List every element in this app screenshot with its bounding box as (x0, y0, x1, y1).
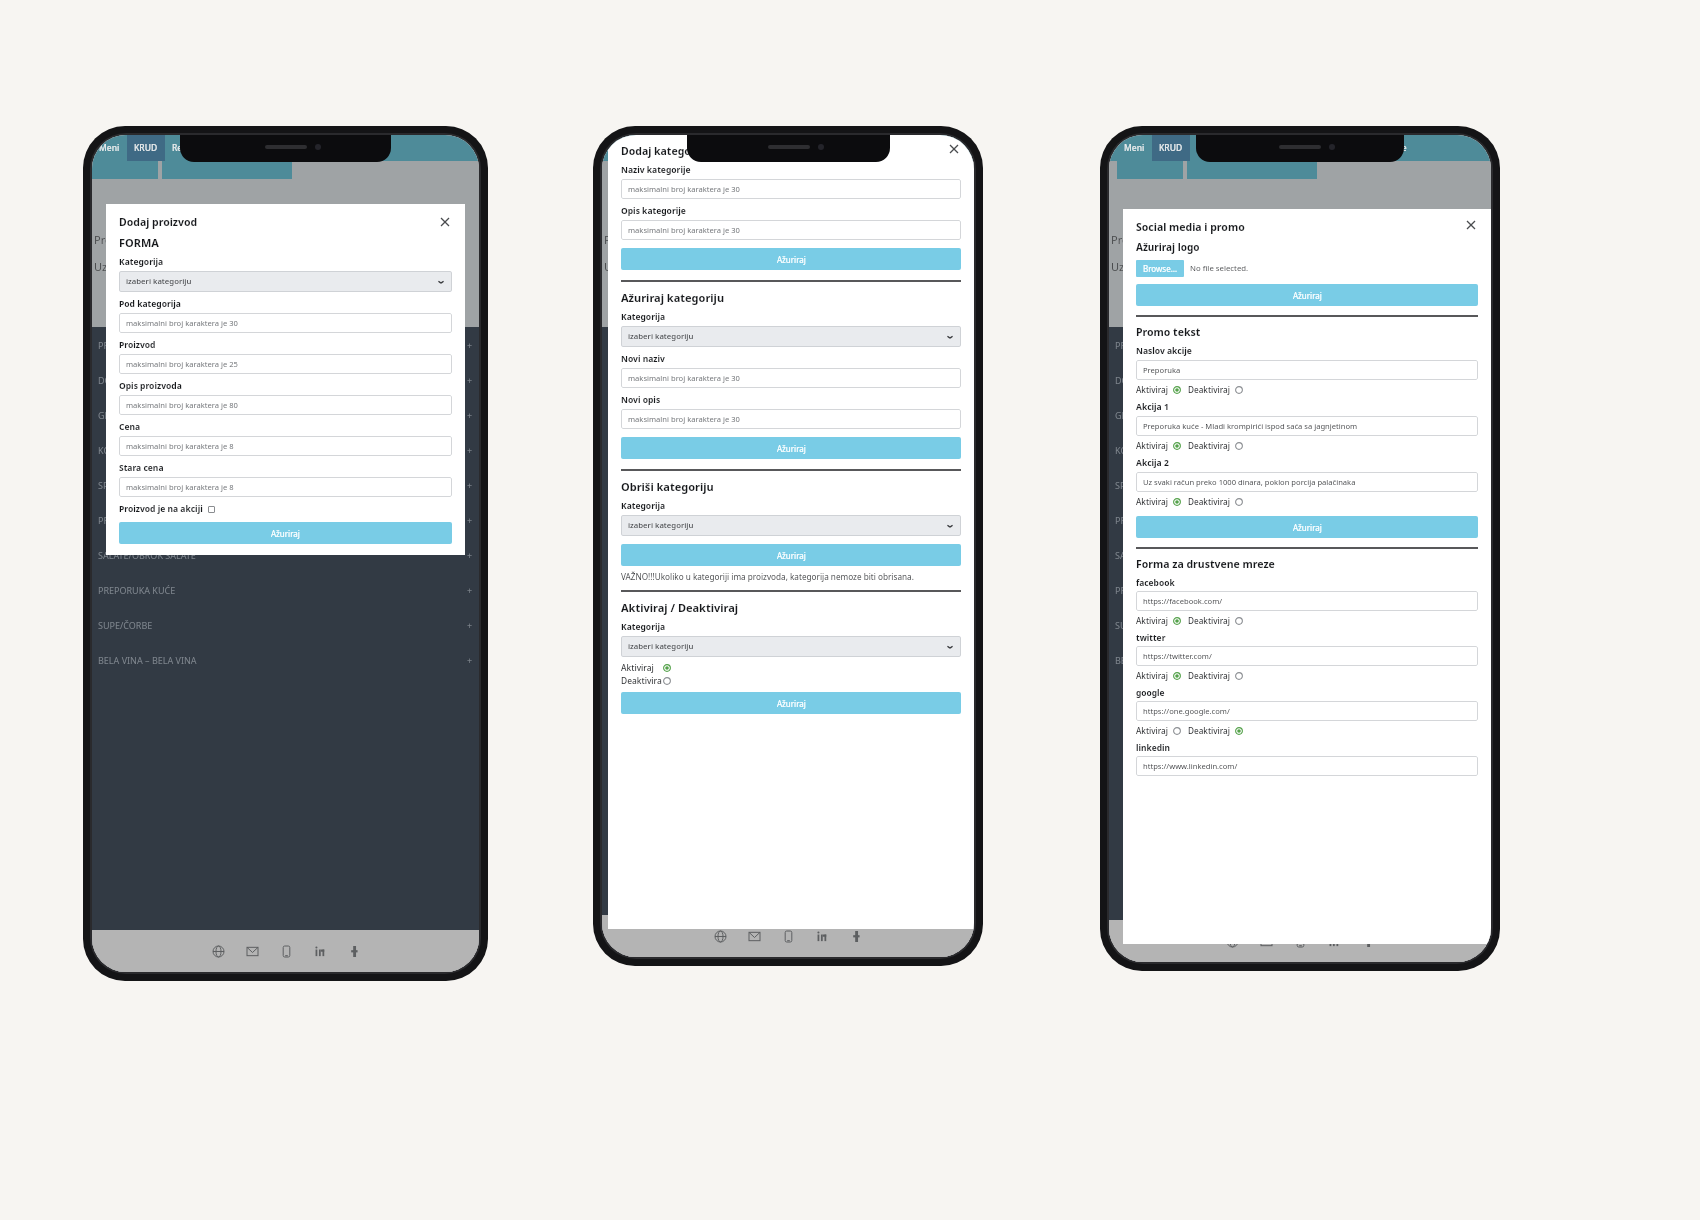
button[interactable]: Izloguj se (336, 135, 389, 161)
button[interactable]: Ažuriraj (1136, 516, 1478, 538)
button[interactable]: Close (438, 215, 452, 229)
button[interactable]: Email (245, 944, 259, 958)
button[interactable]: PRILOZI (602, 502, 974, 537)
button[interactable]: Ažuriraj (1136, 284, 1478, 306)
button[interactable]: Close (1464, 218, 1478, 232)
button[interactable]: maksimalni broj karaktera je 8 (119, 477, 452, 497)
button[interactable]: PREDJELA (92, 327, 479, 362)
button[interactable]: maksimalni broj karaktera je 30 (621, 179, 961, 199)
button[interactable]: Ažuriraj (119, 522, 452, 544)
button[interactable]: Mobile (279, 944, 293, 958)
button[interactable]: izaberi kategoriju (621, 326, 961, 347)
button[interactable]: maksimalni broj karaktera je 30 (621, 220, 961, 240)
button[interactable]: Website (211, 944, 225, 958)
button[interactable]: Email (747, 929, 761, 943)
button[interactable]: PREDJELA (602, 327, 974, 362)
button[interactable]: https://one.google.com/ (1136, 701, 1478, 721)
button[interactable]: PREPORUKA KUĆE (92, 572, 479, 607)
button[interactable]: BELA VINA – BELA VINA (92, 642, 479, 677)
button[interactable]: Aktiviraj (1136, 725, 1243, 736)
button[interactable]: SPECIJALITETI SA ROŠTILJA (602, 467, 974, 502)
button[interactable]: izaberi kategoriju (621, 515, 961, 536)
button[interactable]: izaberi kategoriju (119, 271, 452, 292)
button[interactable]: PRILOZI (1109, 502, 1491, 537)
button[interactable]: Nalog (1322, 135, 1361, 161)
button[interactable]: KOLAČI (92, 432, 479, 467)
button[interactable]: Redosled (1190, 135, 1242, 161)
button[interactable]: Email (1259, 934, 1273, 948)
button[interactable]: Preporuka kuće - Mladi krompirići ispod … (1136, 416, 1478, 436)
button[interactable]: KRUD (643, 135, 681, 161)
button[interactable]: QR code (765, 135, 813, 161)
button[interactable]: Meni (608, 135, 643, 161)
button[interactable]: LinkedIn (815, 929, 829, 943)
button[interactable]: PREPORUKA KUĆE (1109, 572, 1491, 607)
button[interactable]: maksimalni broj karaktera je 30 (621, 409, 961, 429)
button[interactable]: SALATE/OBROK SALATE (92, 537, 479, 572)
button[interactable]: KRUD (1152, 135, 1190, 161)
button[interactable]: Redosled (165, 135, 217, 161)
button[interactable]: Deaktiviraj (621, 675, 671, 686)
button[interactable]: Izloguj se (1361, 135, 1414, 161)
button[interactable]: Meni (92, 135, 127, 161)
button[interactable]: SUPE/ČORBE (1109, 607, 1491, 642)
button[interactable]: maksimalni broj karaktera je 30 (119, 313, 452, 333)
button[interactable]: BELA VINA – BELA VINA (602, 642, 974, 677)
button[interactable]: Facebook (347, 944, 361, 958)
button[interactable]: QR code (249, 135, 297, 161)
button[interactable]: Ažuriraj (621, 248, 961, 270)
button[interactable]: Nalog (813, 135, 852, 161)
button[interactable]: BELA VINA – BELA VINA (1109, 642, 1491, 677)
button[interactable]: Aktiviraj (1136, 670, 1243, 681)
button[interactable]: maksimalni broj karaktera je 30 (621, 368, 961, 388)
button[interactable]: Mobile (1293, 934, 1307, 948)
button[interactable]: Aktiviraj (621, 662, 671, 673)
button[interactable]: Aktiviraj (1136, 615, 1243, 626)
button[interactable]: PREDJELA (1109, 327, 1491, 362)
button[interactable]: Preporuka (1136, 360, 1478, 380)
button[interactable]: QR code (1274, 135, 1322, 161)
button[interactable]: Close (947, 142, 961, 156)
button[interactable]: PRILOZI (92, 502, 479, 537)
button[interactable]: Redosled (681, 135, 733, 161)
button[interactable]: Aktiviraj (1136, 496, 1243, 507)
button[interactable]: KRUD (127, 135, 165, 161)
button[interactable]: SUPE/ČORBE (602, 607, 974, 642)
button[interactable]: DOBRA HRANA (1109, 362, 1491, 397)
button[interactable]: PREPORUKA KUĆE (602, 572, 974, 607)
button[interactable]: Facebook (849, 929, 863, 943)
button[interactable]: https://twitter.com/ (1136, 646, 1478, 666)
button[interactable]: Uz svaki račun preko 1000 dinara, poklon… (1136, 472, 1478, 492)
button[interactable]: Meni (1117, 135, 1152, 161)
button[interactable]: maksimalni broj karaktera je 80 (119, 395, 452, 415)
button[interactable]: SPECIJALITETI SA ROŠTILJA (1109, 467, 1491, 502)
button[interactable]: https://www.linkedin.com/ (1136, 756, 1478, 776)
button[interactable]: Nalog (297, 135, 336, 161)
button[interactable]: Facebook (1361, 934, 1375, 948)
button[interactable]: DOBRA HRANA (602, 362, 974, 397)
button[interactable]: SPECIJALITETI SA ROŠTILJA (92, 467, 479, 502)
button[interactable]: Izloguj se (852, 135, 905, 161)
button[interactable]: maksimalni broj karaktera je 25 (119, 354, 452, 374)
button[interactable]: https://facebook.com/ (1136, 591, 1478, 611)
button[interactable]: LinkedIn (1327, 934, 1341, 948)
button[interactable]: SALATE/OBROK SALATE (1109, 537, 1491, 572)
button[interactable]: SUPE/ČORBE (92, 607, 479, 642)
button[interactable]: Aktiviraj (1136, 440, 1243, 451)
button[interactable]: Ažuriraj (621, 437, 961, 459)
button[interactable]: Ažuriraj (621, 544, 961, 566)
button[interactable]: Browse… (1136, 260, 1184, 277)
button[interactable]: Mobile (781, 929, 795, 943)
button[interactable]: LinkedIn (313, 944, 327, 958)
button[interactable]: KOLAČI (602, 432, 974, 467)
button[interactable]: DOBRA HRANA (92, 362, 479, 397)
button[interactable]: Website (713, 929, 727, 943)
button[interactable]: KOLAČI (1109, 432, 1491, 467)
button[interactable]: Proizvod je na akciji (119, 503, 215, 515)
button[interactable]: izaberi kategoriju (621, 636, 961, 657)
button[interactable]: Website (1225, 934, 1239, 948)
button[interactable]: GLAVNA JELA (92, 397, 479, 432)
